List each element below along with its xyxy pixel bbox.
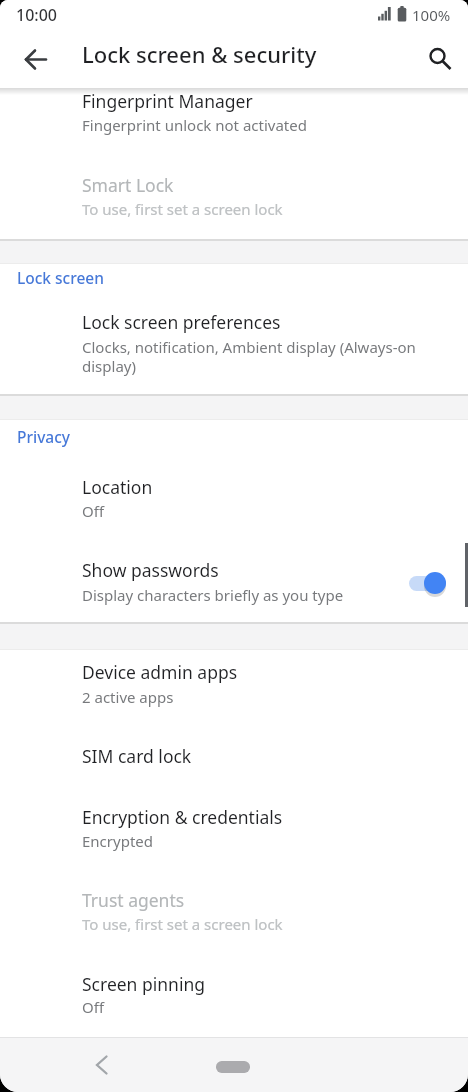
staticText: Display characters briefly as you type <box>82 585 344 605</box>
staticText: Device admin apps <box>82 660 238 684</box>
staticText: Privacy <box>17 426 71 447</box>
button[interactable] <box>76 1041 124 1089</box>
button[interactable]: Fingerprint Manager <box>0 88 468 151</box>
staticText: Clocks, notification, Ambient display (A… <box>82 337 416 376</box>
staticText: Screen pinning <box>82 972 205 996</box>
staticText: Smart Lock <box>82 173 174 197</box>
staticText: Location <box>82 475 153 499</box>
staticText: Fingerprint Manager <box>82 89 253 113</box>
button[interactable]: Location <box>0 458 468 542</box>
button[interactable] <box>414 33 462 81</box>
staticText: Lock screen preferences <box>82 310 281 334</box>
staticText: Trust agents <box>82 888 185 912</box>
button[interactable]: Screen pinning <box>0 961 468 1037</box>
button[interactable] <box>409 576 446 591</box>
button[interactable]: Device admin apps <box>0 650 468 733</box>
button[interactable] <box>216 1061 250 1073</box>
staticText: Fingerprint unlock not activated <box>82 115 307 135</box>
staticText: Off <box>82 997 105 1017</box>
staticText: Show passwords <box>82 558 219 582</box>
staticText: 100% <box>412 5 451 25</box>
button[interactable]: Trust agents <box>0 878 468 961</box>
button[interactable]: SIM card lock <box>0 733 468 795</box>
button[interactable]: Encryption & credentials <box>0 795 468 878</box>
staticText: SIM card lock <box>82 744 192 768</box>
staticText: To use, first set a screen lock <box>82 199 283 219</box>
staticText: Encryption & credentials <box>82 805 283 829</box>
button[interactable]: Lock screen preferences <box>0 293 468 393</box>
staticText: 2 active apps <box>82 687 174 707</box>
staticText: Lock screen <box>17 267 104 288</box>
staticText: To use, first set a screen lock <box>82 914 283 934</box>
button[interactable]: Show passwords <box>0 542 468 622</box>
button[interactable] <box>12 36 60 84</box>
staticText: 10:00 <box>16 4 57 26</box>
staticText: Encrypted <box>82 831 153 851</box>
button[interactable]: Smart Lock <box>0 155 468 239</box>
staticText: Lock screen & security <box>82 39 317 69</box>
staticText: Off <box>82 501 105 521</box>
